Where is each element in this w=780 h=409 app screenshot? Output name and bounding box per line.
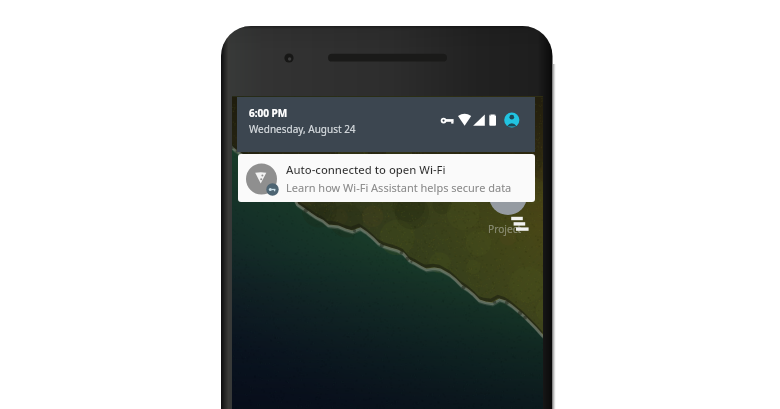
- staticText: Learn how Wi-Fi Assistant helps secure d…: [286, 180, 512, 195]
- staticText: Wednesday, August 24: [249, 122, 356, 136]
- staticText: 6:00 PM: [249, 106, 288, 120]
- staticText: Auto-connected to open Wi-Fi: [286, 162, 446, 177]
- button[interactable]: Time and date: [249, 106, 356, 136]
- button[interactable]: Auto-connected to open Wi-Fi: [286, 162, 512, 195]
- staticText: Project: [488, 222, 522, 236]
